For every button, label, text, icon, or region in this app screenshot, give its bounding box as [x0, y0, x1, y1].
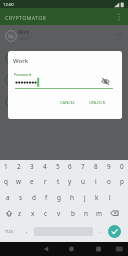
button[interactable]: 5 [52, 159, 64, 174]
staticText: 5 [56, 162, 60, 171]
button[interactable]: r [39, 174, 51, 189]
button[interactable]: 9 [103, 159, 115, 174]
button[interactable]: UNLOCK [86, 98, 108, 107]
button[interactable]: a [2, 190, 14, 205]
button[interactable]: p [116, 174, 128, 189]
button[interactable] [0, 25, 128, 47]
staticText: ?123 [5, 229, 13, 234]
staticText: CANCEL [60, 100, 76, 105]
staticText: l [109, 193, 111, 202]
button[interactable]: 0 [116, 159, 128, 174]
button[interactable]: u [77, 174, 89, 189]
staticText: 4 [43, 162, 47, 171]
button[interactable] [0, 8, 128, 25]
staticText: f [45, 193, 48, 202]
button[interactable]: l [104, 190, 116, 205]
button[interactable]: x [27, 206, 39, 221]
button[interactable]: e [26, 174, 38, 189]
button[interactable]: CANCEL [58, 98, 78, 107]
staticText: 7 [81, 162, 85, 171]
button[interactable]: n [80, 206, 92, 221]
staticText: v [57, 209, 61, 218]
staticText: e [30, 177, 34, 186]
button[interactable]: m [93, 206, 105, 221]
staticText: x [31, 209, 35, 218]
button[interactable]: v [53, 206, 65, 221]
staticText: . [100, 228, 102, 234]
staticText: CRYPTOMATOR [5, 14, 47, 21]
staticText: p [120, 177, 124, 186]
button[interactable]: 8 [90, 159, 102, 174]
staticText: n [84, 209, 88, 218]
button[interactable] [38, 242, 54, 256]
staticText: r [44, 177, 47, 186]
staticText: 0 [120, 162, 124, 171]
staticText: y [68, 177, 72, 186]
button[interactable]: 6 [64, 159, 76, 174]
staticText: s [19, 193, 23, 202]
button[interactable]: k [91, 190, 103, 205]
button[interactable] [64, 242, 80, 256]
button[interactable] [90, 242, 106, 256]
button[interactable] [107, 206, 121, 220]
staticText: 9 [107, 162, 111, 171]
staticText: m [96, 209, 102, 218]
button[interactable]: g [53, 190, 65, 205]
staticText: d [32, 193, 36, 202]
button[interactable]: z [14, 206, 26, 221]
button[interactable]: t [52, 174, 64, 189]
button[interactable]: f [40, 190, 52, 205]
button[interactable]: 1 [0, 159, 12, 174]
staticText: k [95, 193, 99, 202]
staticText: c [44, 209, 48, 218]
staticText: Work [18, 29, 30, 35]
button[interactable] [99, 75, 112, 88]
staticText: 2 [17, 162, 21, 171]
button[interactable] [1, 225, 16, 238]
staticText: g [57, 193, 61, 202]
staticText: , [26, 228, 28, 234]
button[interactable]: 2 [13, 159, 25, 174]
staticText: a [6, 193, 10, 202]
staticText: UNLOCK [89, 100, 106, 105]
staticText: t [57, 177, 60, 186]
staticText: Work [13, 57, 29, 65]
staticText: z [18, 209, 22, 218]
staticText: i [95, 177, 97, 186]
staticText: 1 [4, 162, 8, 171]
staticText: 8 [94, 162, 98, 171]
button[interactable]: b [67, 206, 79, 221]
staticText: 12:00 [3, 2, 14, 8]
button[interactable]: h [66, 190, 78, 205]
button[interactable]: c [40, 206, 52, 221]
staticText: o [107, 177, 111, 186]
button[interactable]: 7 [77, 159, 89, 174]
staticText: Password [14, 72, 32, 77]
staticText: u [81, 177, 85, 186]
staticText: j [84, 193, 86, 202]
button[interactable]: w [13, 174, 25, 189]
staticText: h [70, 193, 74, 202]
button[interactable] [108, 225, 121, 238]
button[interactable]: 4 [39, 159, 51, 174]
staticText: b [71, 209, 75, 218]
button[interactable]: q [0, 174, 12, 189]
staticText: q [4, 177, 8, 186]
button[interactable]: y [64, 174, 76, 189]
button[interactable]: j [79, 190, 91, 205]
button[interactable] [2, 206, 16, 220]
staticText: 6 [68, 162, 72, 171]
button[interactable]: s [15, 190, 27, 205]
button[interactable]: d [28, 190, 40, 205]
staticText: w [16, 177, 22, 186]
button[interactable]: o [103, 174, 115, 189]
staticText: /Work [19, 36, 30, 41]
button[interactable]: 3 [26, 159, 38, 174]
staticText: 3 [30, 162, 34, 171]
button[interactable]: i [90, 174, 102, 189]
